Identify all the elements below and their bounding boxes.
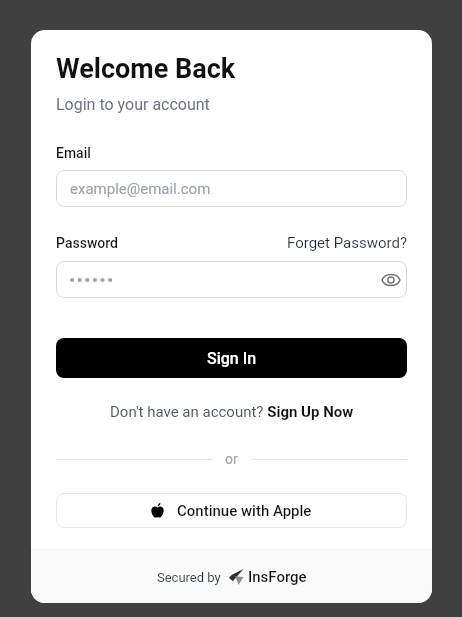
staticText: Continue with Apple: [177, 502, 312, 520]
button[interactable]: [56, 261, 407, 298]
staticText: Sign In: [207, 349, 257, 368]
staticText: Password: [56, 235, 119, 251]
staticText: Secured by: [157, 570, 221, 585]
button[interactable]: Secured by: [157, 568, 307, 586]
staticText: Welcome Back: [56, 53, 236, 85]
staticText: Login to your account: [56, 95, 210, 114]
staticText: InsForge: [248, 568, 307, 586]
staticText: example@email.com: [70, 180, 211, 198]
staticText: or: [225, 451, 238, 467]
button[interactable]: Continue with Apple: [56, 493, 407, 528]
button[interactable]: [378, 267, 404, 293]
button[interactable]: Forget Password?: [287, 234, 407, 252]
button[interactable]: Sign In: [56, 338, 407, 378]
staticText: Email: [56, 145, 91, 161]
staticText: Don't have an account? Sign Up Now: [110, 403, 354, 421]
button[interactable]: example@email.com: [56, 170, 407, 207]
button[interactable]: Don't have an account? Sign Up Now: [56, 403, 407, 421]
